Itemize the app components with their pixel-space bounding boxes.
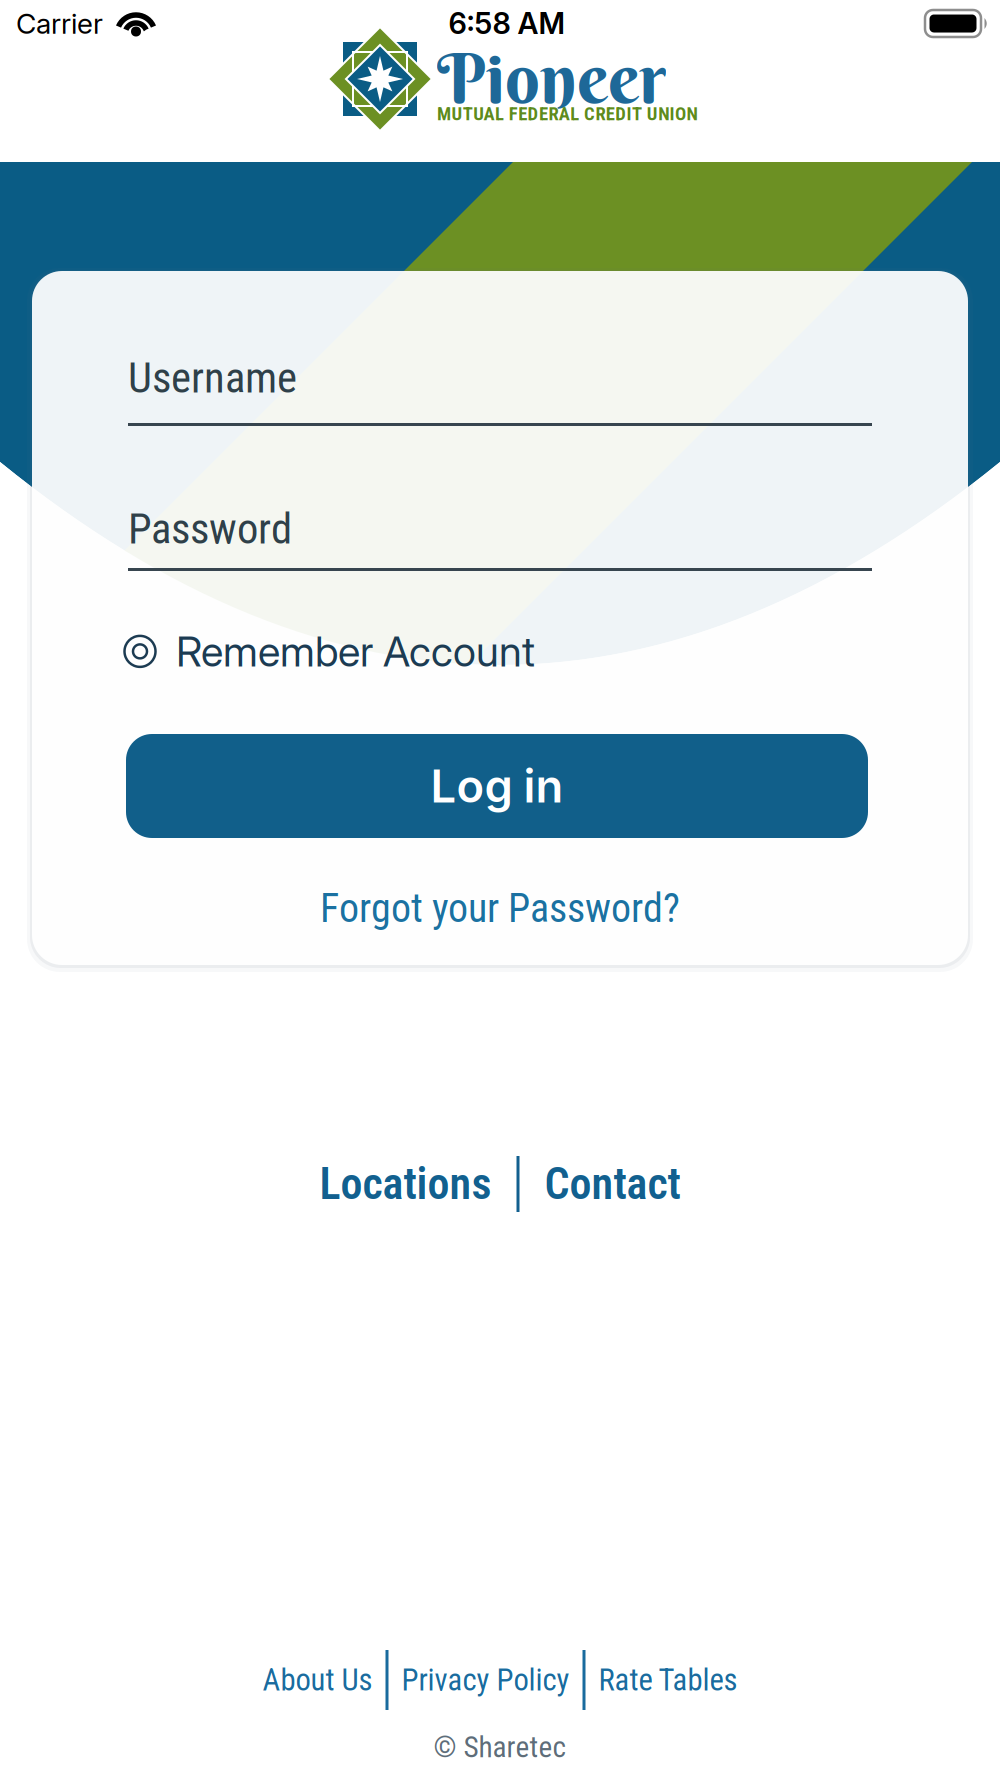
staticText: Rate Tables <box>598 1662 737 1698</box>
button[interactable]: Locations <box>319 1158 491 1210</box>
staticText: Forgot your Password? <box>320 885 680 932</box>
staticText: Log in <box>430 759 563 813</box>
button[interactable]: Rate Tables <box>598 1662 737 1698</box>
button[interactable]: Log in <box>126 734 868 838</box>
staticText: About Us <box>262 1662 372 1698</box>
staticText: 6:58 AM <box>448 6 565 41</box>
button[interactable]: About Us <box>262 1662 372 1698</box>
staticText: Locations <box>319 1158 491 1210</box>
button[interactable]: Privacy Policy <box>401 1662 569 1698</box>
staticText: Remember Account <box>176 627 535 676</box>
button[interactable]: Contact <box>544 1158 680 1210</box>
staticText: Privacy Policy <box>401 1662 569 1698</box>
staticText: Password <box>128 504 292 554</box>
staticText: Username <box>128 353 297 403</box>
button[interactable]: Remember Account <box>124 627 535 676</box>
staticText: Carrier <box>16 7 103 40</box>
staticText: Pioneer <box>437 36 666 120</box>
staticText: MUTUAL FEDERAL CREDIT UNION <box>437 103 697 125</box>
staticText: © Sharetec <box>433 1730 566 1764</box>
staticText: Contact <box>544 1158 680 1210</box>
button[interactable]: Forgot your Password? <box>320 885 680 932</box>
